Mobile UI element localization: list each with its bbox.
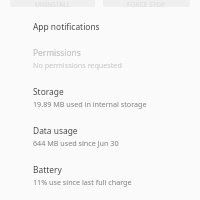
staticText: App notifications [33,21,100,32]
staticText: UNINSTALL [35,0,71,7]
button[interactable]: Storage [0,86,200,109]
staticText: Storage [33,86,64,97]
staticText: FORCE STOP [127,0,166,7]
staticText: Battery [33,164,62,175]
staticText: 644 MB used since Jun 30 [33,138,119,148]
button[interactable]: Force stop [103,0,190,7]
button[interactable]: Uninstall [10,0,95,7]
button[interactable]: App notifications [0,21,200,32]
staticText: Data usage [33,125,78,136]
button[interactable]: Battery [0,164,200,187]
staticText: Permissions [33,47,81,58]
button[interactable]: Data usage [0,125,200,148]
button[interactable]: Permissions [0,47,200,70]
staticText: 11% use since last full charge [33,177,132,187]
staticText: 19.89 MB used in internal storage [33,99,147,109]
staticText: No permissions requested [33,60,122,70]
